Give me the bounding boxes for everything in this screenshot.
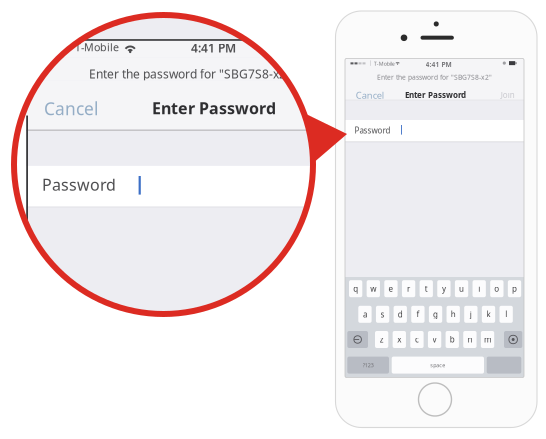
staticText: f	[416, 309, 419, 320]
button[interactable]: q	[349, 280, 362, 297]
staticText: y	[442, 283, 446, 294]
staticText: T-Mobile	[374, 60, 395, 67]
button[interactable]: j	[464, 306, 477, 323]
button[interactable]: n	[463, 331, 476, 348]
button[interactable]: x	[393, 331, 406, 348]
button[interactable]: m	[481, 331, 494, 348]
staticText: n	[467, 334, 472, 345]
button[interactable]: Delete	[504, 331, 522, 348]
staticText: z	[380, 334, 384, 345]
staticText: l	[505, 309, 507, 320]
staticText: Enter the password for "SBG7S8-x2"	[377, 73, 492, 82]
button[interactable]: c	[410, 331, 424, 348]
button[interactable]: g	[429, 306, 442, 323]
button[interactable]: r	[402, 280, 415, 297]
staticText: o	[494, 283, 499, 294]
button[interactable]: Cancel	[345, 58, 373, 71]
button[interactable]: Join	[345, 58, 359, 69]
staticText: ?123	[363, 362, 374, 369]
button[interactable]: b	[446, 331, 459, 348]
button[interactable]: f	[411, 306, 424, 323]
staticText: Cancel	[356, 89, 384, 101]
staticText: b	[450, 334, 455, 345]
button[interactable]: Shift	[347, 331, 368, 348]
button[interactable]: v	[428, 331, 441, 348]
staticText: e	[388, 283, 393, 294]
staticText: v	[433, 334, 437, 345]
staticText: Enter the password for "SBG7S8-x2"	[89, 66, 291, 82]
staticText: Cancel	[44, 97, 98, 120]
button[interactable]: y	[437, 280, 450, 297]
button[interactable]: u	[455, 280, 468, 297]
staticText: j	[470, 309, 472, 320]
staticText: space	[430, 362, 445, 369]
button[interactable]: d	[394, 306, 407, 323]
staticText: x	[397, 334, 401, 345]
staticText: c	[415, 334, 419, 345]
staticText: r	[407, 283, 410, 294]
staticText: m	[484, 334, 491, 345]
button[interactable]: s	[376, 306, 389, 323]
staticText: g	[433, 309, 438, 320]
staticText: d	[398, 309, 403, 320]
staticText: Password	[42, 174, 116, 195]
staticText: q	[353, 283, 358, 294]
staticText: Enter Password	[405, 89, 466, 100]
staticText: s	[381, 309, 385, 320]
staticText: 4:41 PM	[191, 40, 236, 56]
button[interactable]: z	[375, 331, 388, 348]
staticText: Password	[354, 125, 390, 136]
staticText: h	[451, 309, 456, 320]
button[interactable]: h	[447, 306, 460, 323]
button[interactable]: i	[472, 280, 486, 297]
button[interactable]: p	[508, 280, 521, 297]
button[interactable]: ?123	[347, 357, 389, 374]
staticText: w	[370, 283, 376, 294]
staticText: p	[512, 283, 517, 294]
button[interactable]: e	[384, 280, 398, 297]
staticText: Enter Password	[152, 97, 276, 119]
staticText: a	[363, 309, 367, 320]
button[interactable]: a	[358, 306, 372, 323]
staticText: i	[478, 283, 480, 294]
button[interactable]: o	[490, 280, 503, 297]
staticText: Join	[501, 89, 515, 100]
staticText: t	[425, 283, 428, 294]
staticText: k	[486, 309, 490, 320]
button[interactable]: space	[392, 357, 484, 374]
staticText: T-Mobile	[75, 40, 119, 54]
staticText: 4:41 PM	[426, 60, 452, 69]
button[interactable]: t	[420, 280, 433, 297]
staticText: u	[459, 283, 464, 294]
button[interactable]: k	[482, 306, 495, 323]
button[interactable]: l	[499, 306, 513, 323]
button[interactable]: w	[367, 280, 380, 297]
